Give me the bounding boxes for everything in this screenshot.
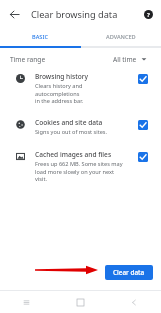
staticText: Clears history and autocompletions in th… xyxy=(35,82,124,104)
button[interactable]: BASIC xyxy=(0,28,80,46)
button[interactable]: ADVANCED xyxy=(80,28,161,46)
staticText: Cookies and site data xyxy=(35,118,103,127)
staticText: Browsing history xyxy=(35,72,89,81)
staticText: Time range xyxy=(10,55,46,64)
button[interactable]: Cached images and files xyxy=(5,150,156,182)
button[interactable]: Checked xyxy=(138,74,148,84)
button[interactable]: Time range xyxy=(0,48,161,70)
staticText: All time xyxy=(113,55,137,64)
button[interactable]: Clear data xyxy=(105,265,153,280)
staticText: Frees up 662 MB. Some sites may load mor… xyxy=(35,160,124,182)
button[interactable]: Cookies and site data xyxy=(5,118,156,136)
staticText: ADVANCED xyxy=(106,33,136,41)
staticText: Clear data xyxy=(113,268,145,277)
button[interactable]: Recent apps xyxy=(0,291,53,313)
staticText: Signs you out of most sites. xyxy=(35,128,108,136)
button[interactable]: Back xyxy=(0,0,28,28)
button[interactable]: Checked xyxy=(138,152,148,162)
button[interactable]: Help xyxy=(135,1,161,27)
button[interactable]: Home xyxy=(53,291,107,313)
staticText: Clear browsing data xyxy=(31,8,118,21)
button[interactable]: Browsing history xyxy=(5,72,156,104)
staticText: BASIC xyxy=(32,33,48,41)
staticText: ? xyxy=(147,11,150,19)
staticText: Cached images and files xyxy=(35,150,112,159)
button[interactable]: Checked xyxy=(138,120,148,130)
